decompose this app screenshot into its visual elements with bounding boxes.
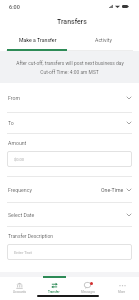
button[interactable]: $0.00: [7, 151, 132, 167]
button[interactable]: Make a Transfer: [0, 31, 69, 51]
staticText: Transfer Description: [8, 233, 54, 239]
button[interactable]: Accounts: [2, 272, 37, 294]
staticText: After cut-off, transfers will post next …: [16, 60, 124, 66]
staticText: To: [8, 120, 14, 126]
staticText: Frequency: [8, 187, 32, 193]
button[interactable]: Transfer: [37, 272, 71, 294]
button[interactable]: From: [0, 83, 139, 113]
staticText: Activity: [95, 37, 112, 43]
staticText: 6:00: [9, 4, 20, 10]
other: Open menu: [127, 189, 131, 191]
staticText: Amount: [8, 140, 27, 146]
other: Open menu: [127, 97, 131, 99]
staticText: From: [8, 95, 21, 101]
staticText: Make a Transfer: [19, 37, 57, 43]
staticText: Transfer: [48, 290, 60, 294]
staticText: Enter Text: [14, 250, 32, 255]
staticText: Transfers: [57, 18, 87, 26]
staticText: Select Date: [8, 212, 35, 218]
staticText: One-Time: [101, 187, 124, 193]
button[interactable]: Frequency: [0, 177, 139, 203]
other: Open menu: [127, 214, 131, 216]
staticText: Messages: [81, 290, 96, 294]
other: Open menu: [127, 122, 131, 124]
staticText: Accounts: [13, 290, 27, 294]
button[interactable]: To: [0, 113, 139, 134]
staticText: Cut-off Time: 4:00 am MST: [40, 69, 99, 75]
button[interactable]: Activity: [69, 31, 139, 51]
button[interactable]: Messages: [71, 272, 105, 294]
staticText: More: [118, 290, 126, 294]
button[interactable]: Select Date: [0, 203, 139, 227]
button[interactable]: Enter Text: [7, 244, 132, 260]
staticText: $0.00: [14, 157, 25, 162]
button[interactable]: More: [105, 272, 139, 294]
